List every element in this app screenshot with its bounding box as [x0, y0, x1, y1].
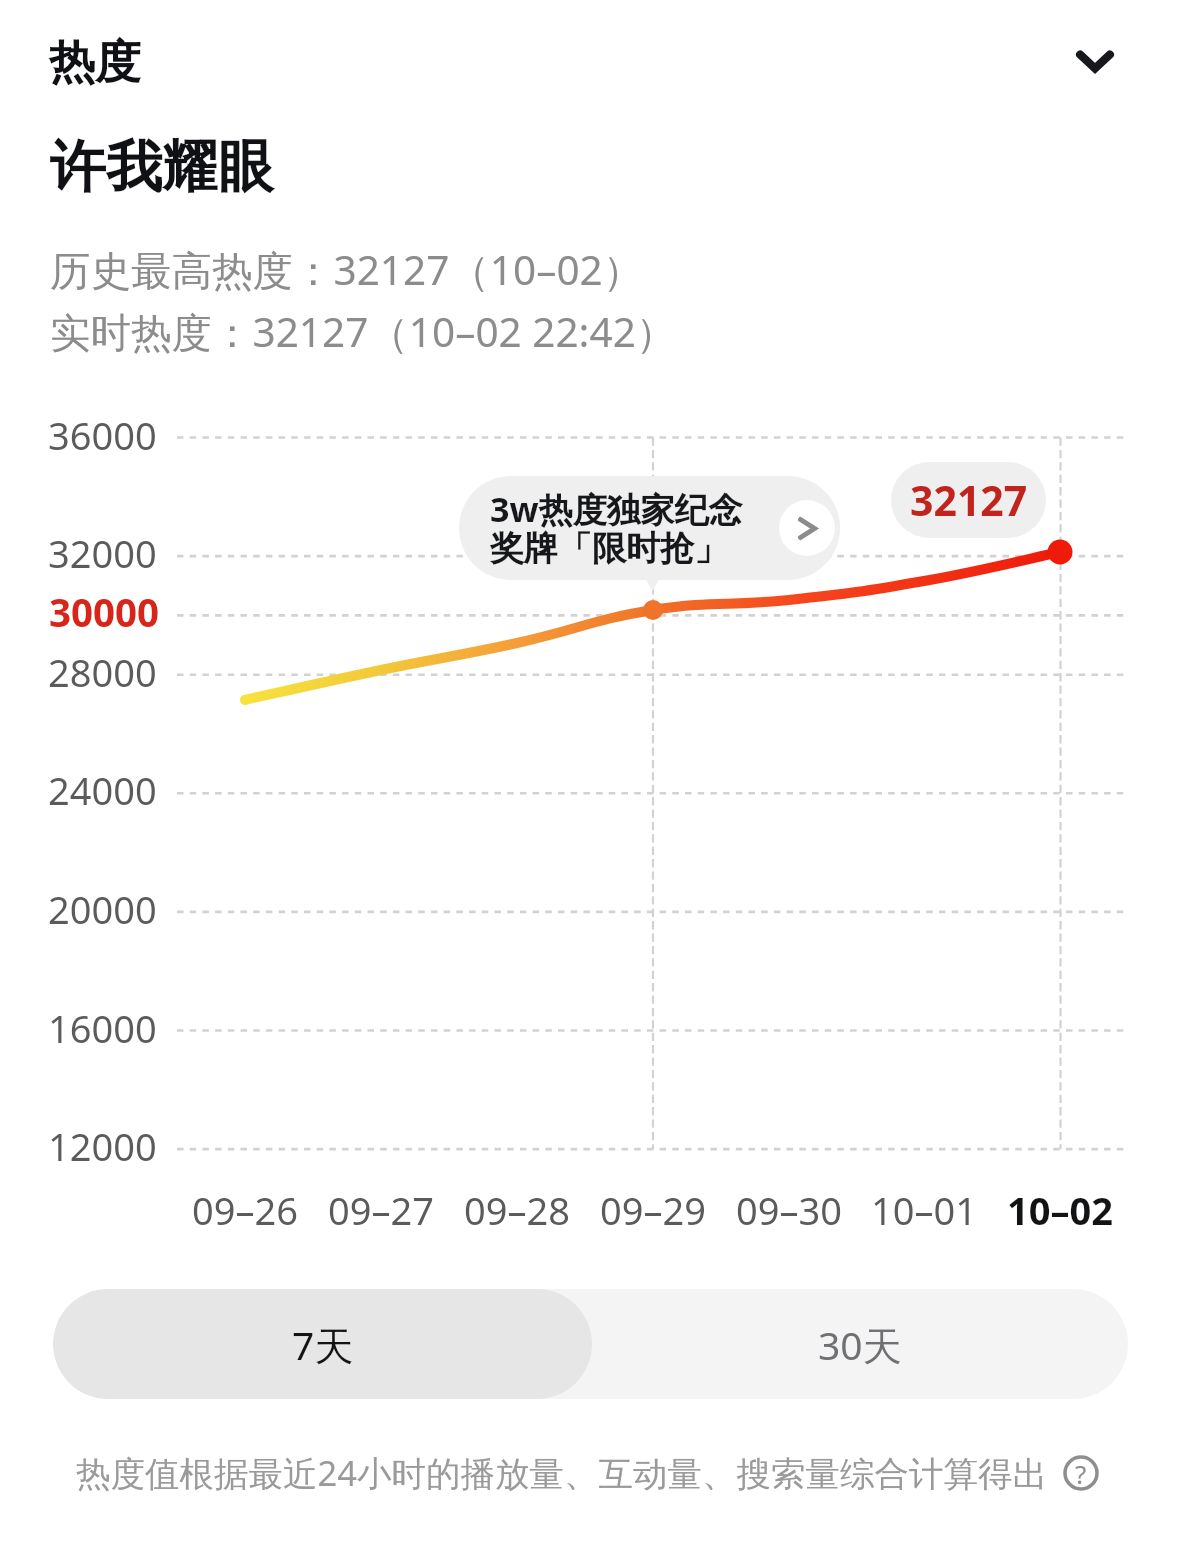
staticText: 16000 [48, 1002, 157, 1052]
staticText: 09–26 [192, 1184, 298, 1234]
staticText: 24000 [48, 764, 157, 814]
staticText: 20000 [48, 883, 157, 933]
staticText: 实时热度：32127（10–02 22:42） [50, 304, 677, 359]
staticText: 28000 [48, 646, 157, 696]
button[interactable]: 7天 [53, 1289, 592, 1399]
staticText: 历史最高热度：32127（10–02） [50, 242, 644, 297]
staticText: 12000 [48, 1120, 157, 1170]
button[interactable]: 30天 [592, 1289, 1128, 1399]
button[interactable]: 3w热度独家纪念 奖牌「限时抢」 [459, 476, 840, 580]
button[interactable]: Help [1059, 1451, 1103, 1495]
staticText: 36000 [48, 409, 157, 459]
button[interactable]: Collapse [1055, 21, 1135, 101]
staticText: 32127 [910, 472, 1028, 528]
staticText: 热度值根据最近24小时的播放量、互动量、搜索量综合计算得出 [76, 1449, 1047, 1496]
staticText: 30天 [818, 1318, 902, 1371]
staticText: 32000 [48, 527, 157, 577]
staticText: 09–29 [600, 1184, 706, 1234]
staticText: 10–01 [871, 1184, 977, 1234]
staticText: 09–28 [464, 1184, 570, 1234]
staticText: 许我耀眼 [50, 132, 274, 203]
staticText: 3w热度独家纪念 奖牌「限时抢」 [490, 486, 743, 570]
staticText: 30000 [49, 586, 160, 636]
staticText: 热度 [49, 34, 141, 92]
staticText: 09–30 [736, 1184, 842, 1234]
staticText: ? [1075, 1456, 1087, 1491]
staticText: 10–02 [1007, 1184, 1113, 1234]
staticText: 7天 [292, 1318, 354, 1371]
staticText: 09–27 [328, 1184, 434, 1234]
